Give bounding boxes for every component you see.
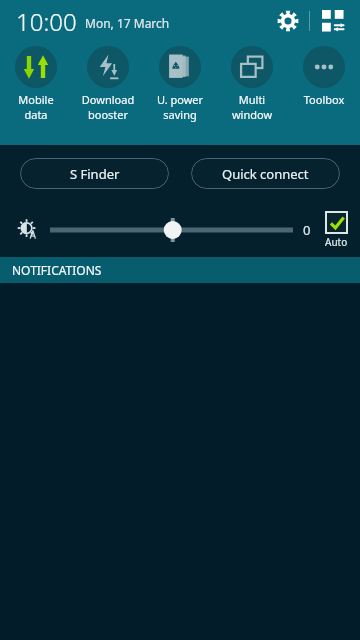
button[interactable]: Download: [72, 44, 144, 122]
button[interactable]: Toolbox: [288, 44, 360, 107]
button[interactable]: Brightness slider: [50, 215, 293, 245]
staticText: saving: [144, 107, 216, 122]
button[interactable]: Mobile: [0, 44, 72, 122]
button[interactable]: Auto brightness: [12, 214, 44, 246]
button[interactable]: Edit quick settings: [316, 4, 350, 38]
staticText: Multi: [216, 92, 288, 107]
staticText: Mobile: [0, 92, 72, 107]
staticText: NOTIFICATIONS: [12, 262, 102, 278]
staticText: Toolbox: [288, 92, 360, 107]
staticText: 0: [303, 221, 311, 239]
staticText: S Finder: [70, 165, 120, 183]
staticText: booster: [72, 107, 144, 122]
button[interactable]: Auto: [325, 211, 348, 249]
staticText: window: [216, 107, 288, 122]
staticText: 10:00: [16, 5, 77, 38]
button[interactable]: Multi: [216, 44, 288, 122]
button[interactable]: U. power: [144, 44, 216, 122]
staticText: Quick connect: [222, 165, 309, 183]
staticText: Auto: [325, 235, 348, 249]
staticText: data: [0, 107, 72, 122]
button[interactable]: Quick connect: [191, 158, 340, 189]
staticText: Download: [72, 92, 144, 107]
button[interactable]: S Finder: [20, 158, 169, 189]
staticText: Mon, 17 March: [85, 15, 170, 31]
button[interactable]: Settings: [271, 4, 305, 38]
staticText: U. power: [144, 92, 216, 107]
